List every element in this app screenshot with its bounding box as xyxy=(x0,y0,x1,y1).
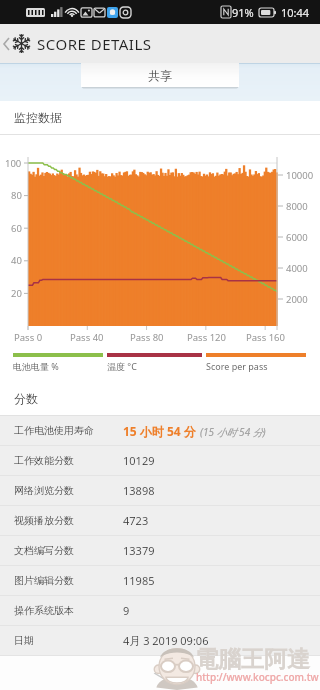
staticText: 13379 xyxy=(123,543,155,558)
staticText: 60 xyxy=(11,222,22,235)
staticText: Pass 0 xyxy=(14,331,43,344)
staticText: 2000 xyxy=(286,293,308,306)
staticText: 日期 xyxy=(14,634,34,647)
staticText: 10129 xyxy=(123,453,155,468)
staticText: Score per pass xyxy=(206,360,268,372)
button[interactable]: 文档编写分数 xyxy=(0,536,320,565)
staticText: 6000 xyxy=(286,231,308,244)
staticText: (15 小时 54 分) xyxy=(200,425,266,439)
button[interactable]: 工作效能分数 xyxy=(0,446,320,475)
button[interactable]: 共享 xyxy=(81,63,239,87)
staticText: 操作系统版本 xyxy=(14,604,74,617)
staticText: 工作效能分数 xyxy=(14,454,74,467)
staticText: 80 xyxy=(11,189,22,202)
staticText: 8000 xyxy=(286,200,308,213)
staticText: 10:44 xyxy=(281,5,310,20)
button[interactable]: 视频播放分数 xyxy=(0,506,320,535)
staticText: 4月 3 2019 09:06 xyxy=(123,633,209,648)
staticText: Pass 80 xyxy=(130,331,164,344)
staticText: SCORE DETAILS xyxy=(37,34,152,54)
staticText: 图片编辑分数 xyxy=(14,574,74,587)
button[interactable]: 日期 xyxy=(0,626,320,655)
staticText: 分数 xyxy=(14,391,38,406)
button[interactable]: 工作电池使用寿命 xyxy=(0,416,320,445)
staticText: 工作电池使用寿命 xyxy=(14,424,94,437)
staticText: 共享 xyxy=(148,68,172,83)
button[interactable]: Back xyxy=(0,24,12,63)
button[interactable]: 图片编辑分数 xyxy=(0,566,320,595)
staticText: 视频播放分数 xyxy=(14,514,74,527)
staticText: 20 xyxy=(11,287,22,300)
staticText: http://www.kocpc.com.tw xyxy=(196,670,319,684)
staticText: Pass 40 xyxy=(70,331,104,344)
staticText: 91% xyxy=(232,5,254,20)
staticText: 4723 xyxy=(123,513,149,528)
staticText: 電腦王阿達 xyxy=(195,645,310,674)
staticText: 文档编写分数 xyxy=(14,544,74,557)
staticText: 监控数据 xyxy=(14,110,62,125)
staticText: 100 xyxy=(5,157,22,170)
staticText: 13898 xyxy=(123,483,155,498)
staticText: 11985 xyxy=(123,573,155,588)
button[interactable]: 操作系统版本 xyxy=(0,596,320,625)
staticText: 温度 °C xyxy=(107,360,137,372)
staticText: Pass 120 xyxy=(187,331,226,344)
staticText: 电池电量 % xyxy=(13,360,59,372)
staticText: Pass 160 xyxy=(246,331,285,344)
staticText: 40 xyxy=(11,254,22,267)
staticText: 15 小时 54 分 xyxy=(123,423,196,439)
button[interactable]: 网络浏览分数 xyxy=(0,476,320,505)
staticText: 4000 xyxy=(286,262,308,275)
staticText: 9 xyxy=(123,603,130,618)
staticText: 网络浏览分数 xyxy=(14,484,74,497)
button[interactable]: Back xyxy=(141,656,179,690)
staticText: 10000 xyxy=(286,169,314,182)
